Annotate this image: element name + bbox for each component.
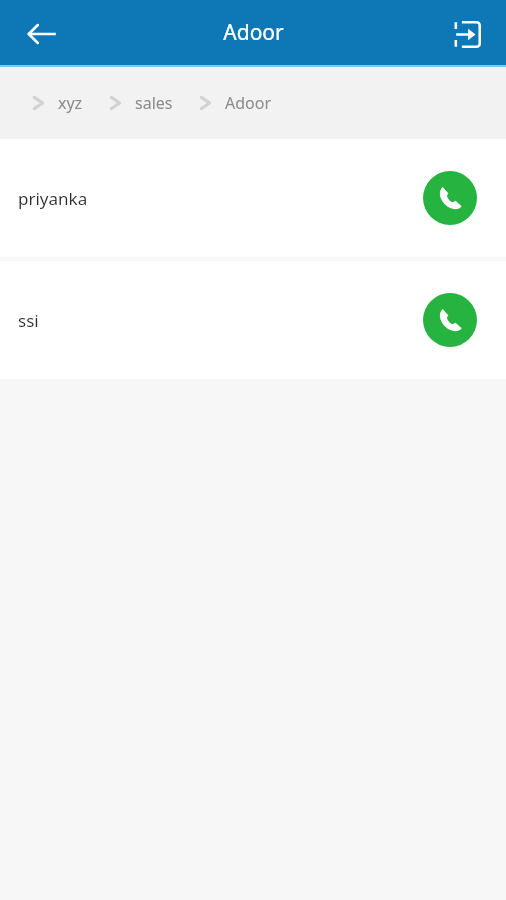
button[interactable]: Logout (442, 9, 492, 59)
button[interactable]: priyanka (0, 139, 506, 257)
button[interactable]: Adoor (199, 88, 272, 118)
button[interactable]: sales (109, 88, 173, 118)
button[interactable]: ssi (0, 261, 506, 379)
staticText: ssi (18, 309, 39, 332)
staticText: Adoor (223, 18, 284, 47)
button[interactable]: Call ssi (423, 293, 477, 347)
staticText: sales (135, 92, 173, 114)
button[interactable]: Call priyanka (423, 171, 477, 225)
staticText: Adoor (225, 92, 272, 114)
button[interactable]: Back (14, 6, 70, 62)
button[interactable]: xyz (32, 88, 83, 118)
staticText: priyanka (18, 187, 88, 210)
staticText: xyz (58, 92, 83, 114)
